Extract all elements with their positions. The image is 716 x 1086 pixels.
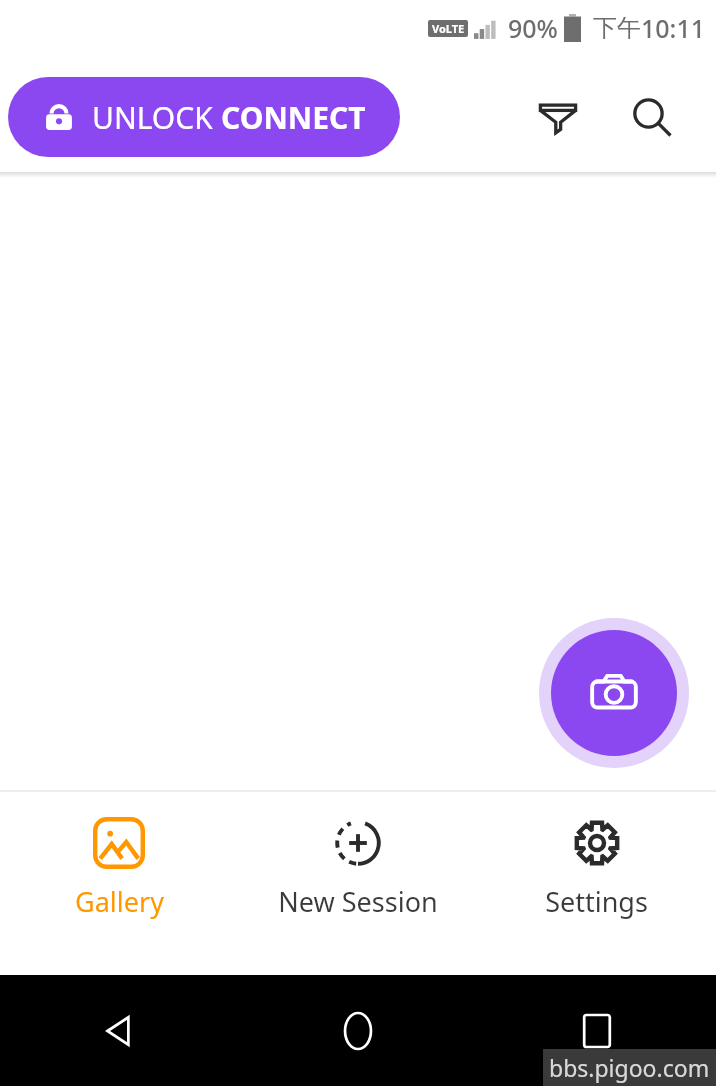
button[interactable]: UNLOCK [8, 77, 400, 157]
staticText: 10:11 [641, 11, 706, 45]
button[interactable]: Take photo [539, 618, 689, 768]
staticText: bbs.pigoo.com [549, 1052, 710, 1083]
staticText: Settings [545, 883, 648, 920]
button[interactable]: Settings [477, 792, 716, 975]
staticText: VoLTE [432, 21, 465, 36]
button[interactable]: New Session [238, 792, 477, 975]
staticText: 下午 [593, 13, 641, 43]
staticText: CONNECT [221, 97, 366, 138]
button[interactable]: Search [621, 86, 683, 148]
button[interactable]: Filter [527, 86, 589, 148]
staticText: Gallery [75, 883, 164, 920]
staticText: New Session [278, 883, 438, 920]
button[interactable]: Gallery [0, 792, 238, 975]
staticText: 90% [508, 11, 558, 45]
button[interactable]: Home [328, 1001, 388, 1061]
staticText: UNLOCK [92, 97, 221, 138]
button[interactable]: Back [89, 1001, 149, 1061]
button[interactable]: Recents [567, 1001, 627, 1061]
